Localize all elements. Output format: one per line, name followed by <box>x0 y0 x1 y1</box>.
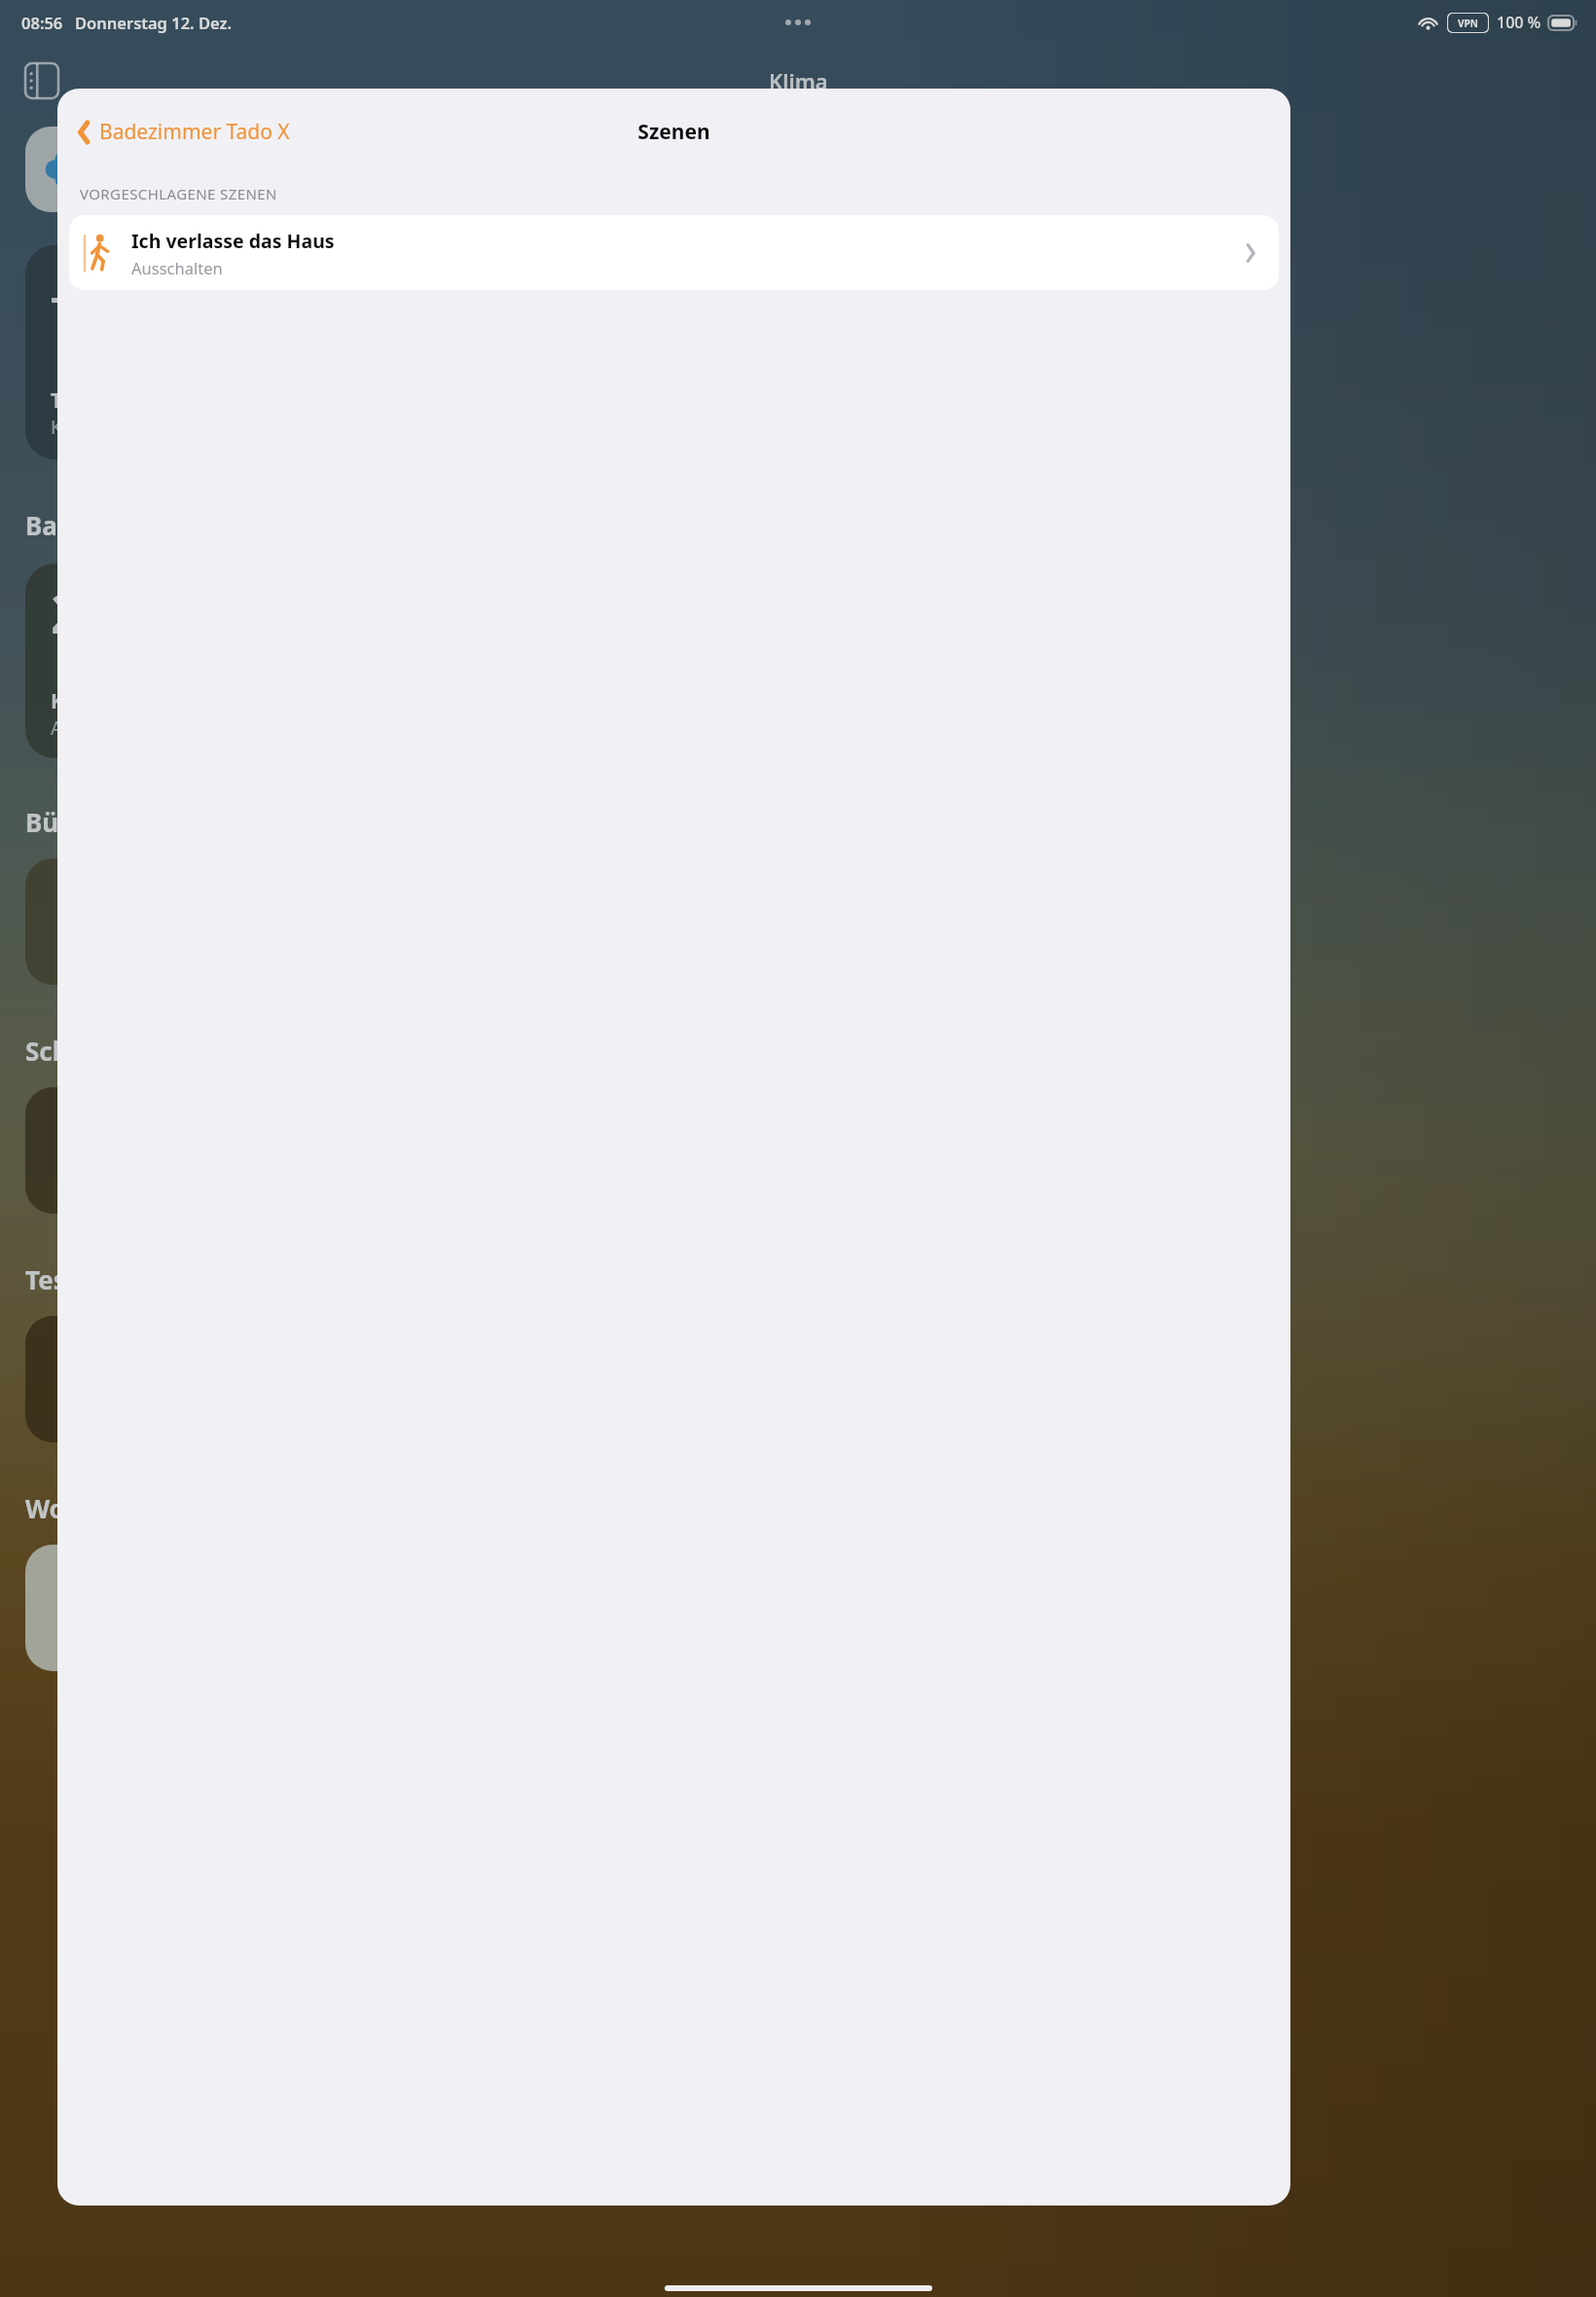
staticText: - - <box>51 269 86 321</box>
staticText: Kasa <box>51 687 99 715</box>
staticText: Bade <box>25 508 89 542</box>
staticText: Donnerstag 12. Dez. <box>75 12 233 33</box>
staticText: Kein <box>51 415 90 440</box>
staticText: Badezimmer Tado X <box>99 118 290 146</box>
staticText: 2 <box>51 573 84 650</box>
staticText: 100 % <box>1497 12 1542 33</box>
staticText: Szenen <box>637 118 710 146</box>
staticText: Aus <box>51 715 83 741</box>
staticText: Schl <box>25 1034 77 1068</box>
staticText: Test <box>25 1262 78 1296</box>
staticText: VORGESCHLAGENE SZENEN <box>80 184 277 203</box>
staticText: Klima <box>769 66 828 95</box>
other: Details <box>1236 238 1265 268</box>
button[interactable]: Ich verlasse das Haus <box>69 215 1279 290</box>
staticText: 08:56 <box>21 12 63 33</box>
staticText: Woh <box>25 1491 82 1525</box>
staticText: Ich verlasse das Haus <box>131 228 335 254</box>
staticText: Büro <box>25 805 86 839</box>
staticText: TP-L <box>51 386 93 415</box>
staticText: VPN <box>1458 17 1478 30</box>
staticText: Ausschalten <box>131 257 223 278</box>
button[interactable]: Badezimmer Tado X <box>57 112 300 152</box>
